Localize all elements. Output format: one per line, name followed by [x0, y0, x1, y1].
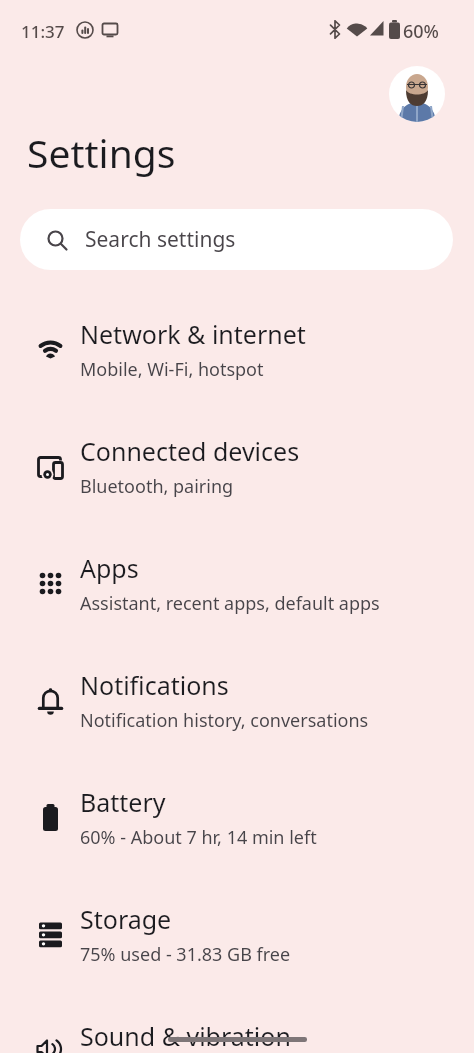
- staticText: 11:37: [21, 20, 65, 43]
- staticText: 75% used - 31.83 GB free: [80, 942, 291, 967]
- staticText: Connected devices: [80, 434, 300, 468]
- button[interactable]: Network & internet: [0, 291, 474, 408]
- staticText: 60% - About 7 hr, 14 min left: [80, 825, 317, 850]
- button[interactable]: Storage: [0, 876, 474, 993]
- button[interactable]: Connected devices: [0, 408, 474, 525]
- staticText: Battery: [80, 785, 166, 819]
- staticText: Mobile, Wi-Fi, hotspot: [80, 357, 264, 382]
- staticText: Notification history, conversations: [80, 708, 369, 733]
- button[interactable]: Battery: [0, 759, 474, 876]
- button[interactable]: Search settings: [20, 209, 453, 270]
- staticText: 60%: [403, 19, 439, 44]
- button[interactable]: Apps: [0, 525, 474, 642]
- staticText: Storage: [80, 902, 172, 936]
- staticText: Bluetooth, pairing: [80, 474, 234, 499]
- staticText: Sound & vibration: [80, 1019, 291, 1053]
- staticText: Network & internet: [80, 317, 306, 351]
- staticText: Search settings: [85, 225, 236, 254]
- button[interactable]: [389, 66, 445, 122]
- staticText: Notifications: [80, 668, 229, 702]
- staticText: Apps: [80, 551, 139, 585]
- button[interactable]: Sound & vibration: [0, 993, 474, 1053]
- button[interactable]: Notifications: [0, 642, 474, 759]
- staticText: Assistant, recent apps, default apps: [80, 591, 380, 616]
- staticText: Settings: [27, 126, 176, 179]
